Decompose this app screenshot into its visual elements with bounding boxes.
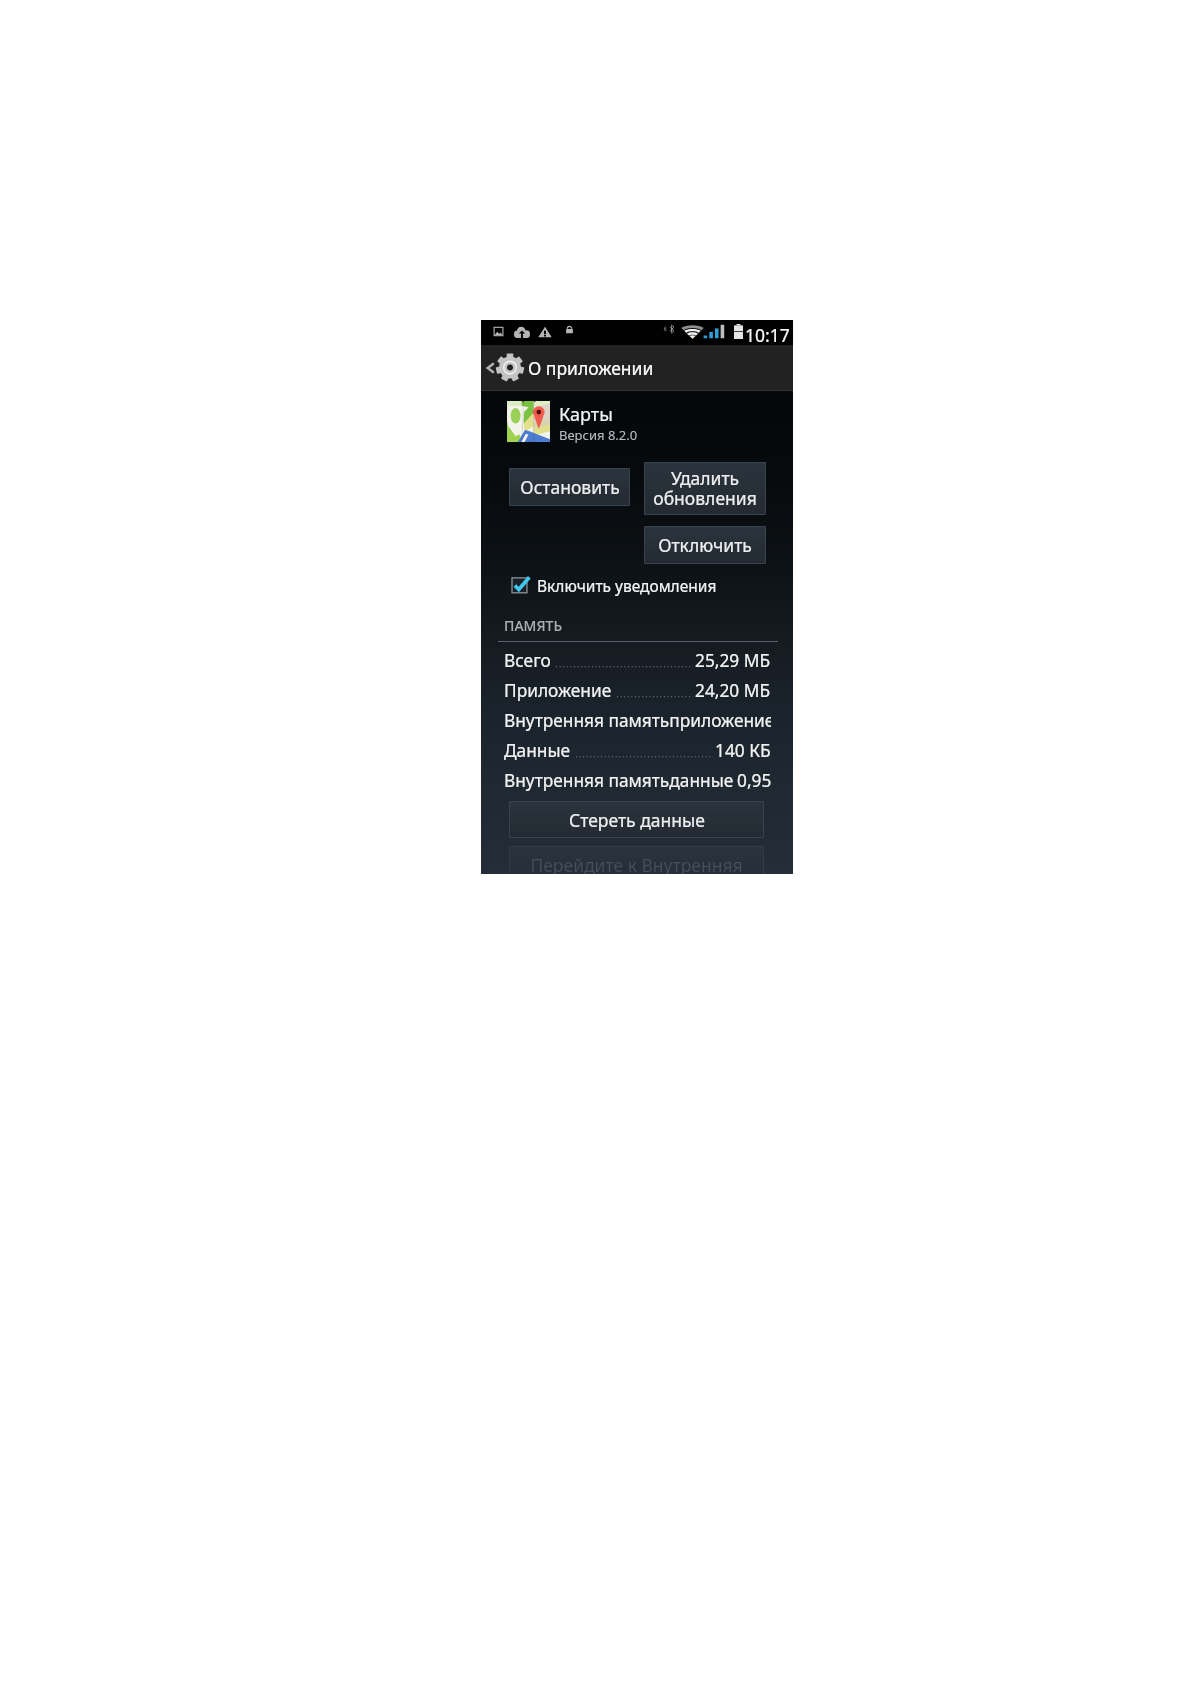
button[interactable]: Всего [504,648,771,674]
staticText: Всего [504,649,551,673]
staticText: Внутренняя памятьприложение [504,709,771,733]
button[interactable]: Внутренняя памятьприложение [504,708,771,734]
staticText: 24,20 МБ [695,679,771,703]
staticText: О приложении [528,356,654,380]
staticText: Перейдите к Внутренняя [530,853,743,874]
staticText: 10:17 [745,323,790,347]
staticText: 0,95 [737,769,771,793]
staticText: Удалить обновления [653,466,757,511]
staticText: Данные [504,739,571,763]
button[interactable]: Внутренняя памятьданные [504,768,771,794]
staticText: 140 КБ [715,739,771,763]
staticText: 25,29 МБ [695,649,771,673]
staticText: Приложение [504,679,612,703]
button[interactable]: Удалить обновления [644,462,766,515]
button[interactable]: Приложение [504,678,771,704]
staticText: Карты [559,402,613,427]
button[interactable]: Navigate up [481,345,528,391]
staticText: Остановить [520,475,620,499]
staticText: Внутренняя памятьданные [504,769,734,793]
staticText: Отключить [658,533,752,557]
staticText: Версия 8.2.0 [559,426,638,444]
staticText: Стереть данные [569,808,705,832]
button[interactable]: Включить уведомления [512,575,717,596]
button[interactable]: Стереть данные [509,801,764,838]
button[interactable]: Данные [504,738,771,764]
button[interactable]: Остановить [509,468,630,506]
staticText: ПАМЯТЬ [504,616,563,635]
button[interactable]: Перейдите к Внутренняя [509,846,764,874]
staticText: Включить уведомления [537,575,717,596]
button[interactable]: Отключить [644,526,766,564]
